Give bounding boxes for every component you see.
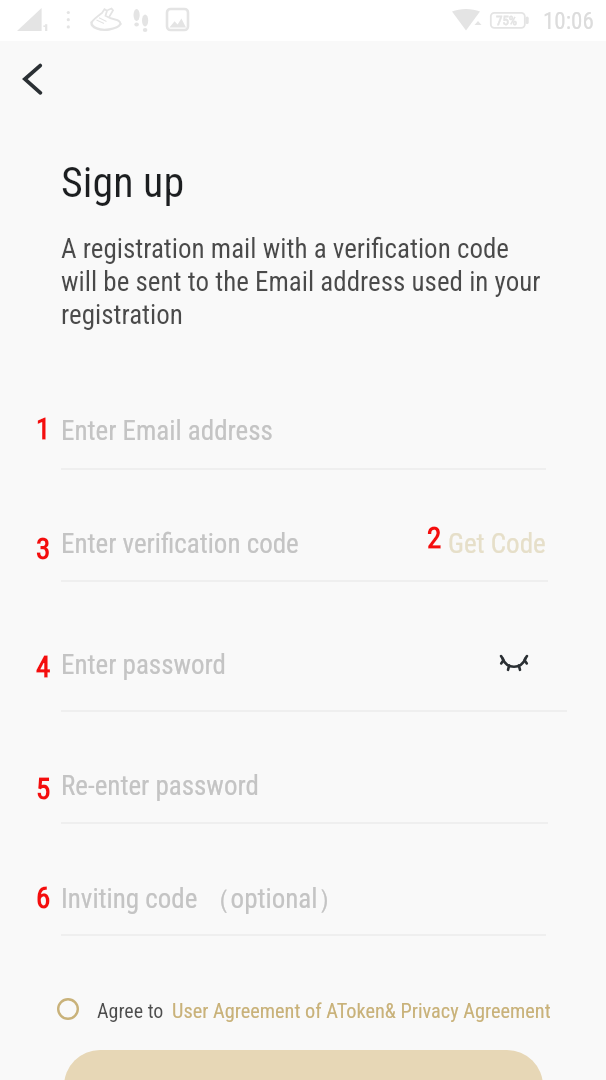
staticText: A registration mail with a verification … [61, 233, 541, 330]
staticText: Enter password [61, 649, 226, 681]
staticText: 5 [36, 772, 51, 806]
button[interactable]: Show password [480, 642, 546, 684]
staticText: 6 [36, 881, 51, 915]
button[interactable]: Back [0, 48, 64, 112]
staticText: 4 [36, 650, 51, 684]
button[interactable] [64, 1050, 543, 1080]
staticText: 75% [496, 13, 518, 28]
button[interactable]: 5 [0, 743, 606, 833]
button[interactable]: 1 [0, 388, 606, 479]
staticText: Inviting code （optional） [61, 882, 345, 916]
staticText: 10:06 [543, 8, 594, 35]
button[interactable]: 6 [0, 855, 606, 945]
staticText: Enter Email address [61, 415, 273, 447]
staticText: 1 [36, 412, 51, 446]
staticText: 3 [36, 532, 51, 566]
staticText: Get Code [448, 528, 546, 560]
button[interactable]: 3 [0, 501, 606, 591]
button[interactable]: 4 [0, 622, 606, 721]
staticText: Re-enter password [61, 770, 259, 802]
staticText: 2 [427, 521, 442, 555]
staticText: Enter verification code [61, 528, 299, 560]
staticText: Agree to [97, 999, 164, 1022]
staticText: Sign up [61, 158, 185, 207]
button[interactable]: Agree to [0, 986, 606, 1032]
staticText: User Agreement of AToken& Privacy Agreem… [172, 999, 551, 1023]
